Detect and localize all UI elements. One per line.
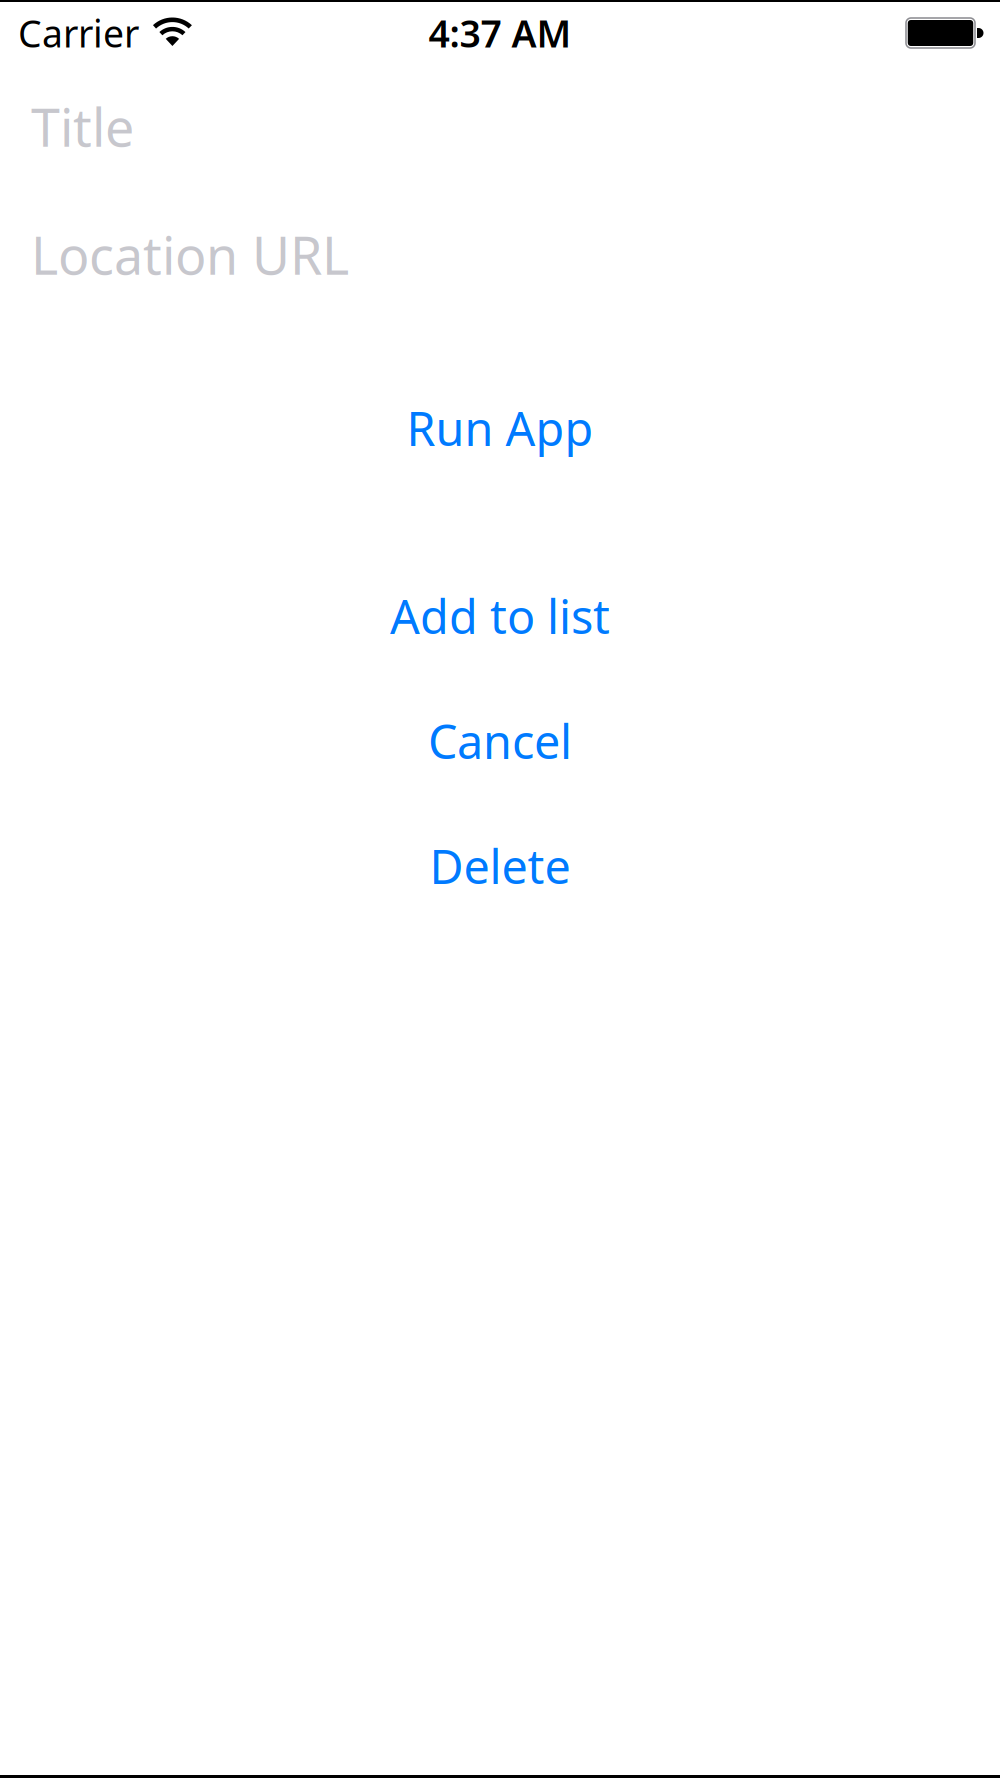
staticText: Carrier bbox=[18, 8, 139, 58]
button[interactable]: Title bbox=[31, 92, 969, 161]
staticText: Add to list bbox=[390, 585, 610, 647]
staticText: Delete bbox=[429, 835, 570, 897]
staticText: Title bbox=[31, 92, 134, 161]
button[interactable]: Add to list bbox=[389, 585, 611, 647]
button[interactable]: Cancel bbox=[427, 710, 573, 772]
staticText: Cancel bbox=[428, 710, 572, 772]
staticText: 4:37 AM bbox=[428, 8, 571, 58]
button[interactable]: Delete bbox=[428, 835, 571, 897]
button[interactable]: Location URL bbox=[31, 220, 969, 289]
staticText: Run App bbox=[406, 397, 593, 459]
staticText: Location URL bbox=[31, 220, 349, 289]
button[interactable]: Run App bbox=[406, 397, 594, 459]
